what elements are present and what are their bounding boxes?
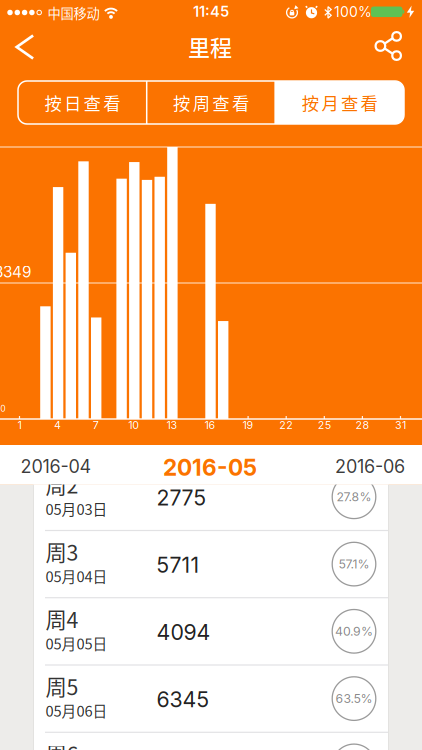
button[interactable]: Share: [367, 24, 411, 68]
button[interactable]: 按月查看: [276, 81, 404, 124]
staticText: 周4: [45, 603, 78, 634]
button[interactable]: 按日查看: [18, 81, 146, 124]
button[interactable]: 2016-04: [0, 447, 112, 486]
staticText: 31: [395, 419, 406, 432]
button[interactable]: 周6: [34, 732, 388, 750]
staticText: 周6: [45, 738, 78, 750]
staticText: 05月03日: [45, 498, 107, 519]
staticText: 2016-04: [20, 456, 91, 477]
staticText: 13: [166, 419, 177, 432]
staticText: 22: [279, 419, 293, 432]
staticText: 16: [204, 419, 215, 432]
staticText: 5711: [156, 552, 199, 578]
staticText: 6345: [156, 687, 209, 712]
button[interactable]: 周4: [34, 598, 388, 665]
staticText: 19: [243, 419, 254, 432]
staticText: 7: [93, 419, 99, 432]
staticText: 4094: [156, 619, 210, 645]
staticText: 1: [17, 419, 21, 432]
staticText: 25: [318, 419, 331, 432]
staticText: 中国移动: [47, 3, 99, 22]
staticText: 28: [355, 419, 369, 432]
staticText: 4: [54, 419, 61, 432]
staticText: 100%: [334, 3, 372, 20]
staticText: 2016-05: [163, 454, 257, 481]
button[interactable]: 2016-06: [314, 447, 422, 486]
staticText: 05月05日: [45, 632, 107, 654]
staticText: 按月查看: [302, 90, 378, 115]
staticText: 63.5%: [335, 691, 372, 706]
staticText: 11:45: [193, 3, 229, 20]
staticText: 27.8%: [336, 489, 371, 504]
button[interactable]: 按周查看: [147, 81, 275, 124]
button[interactable]: 周3: [34, 530, 388, 598]
staticText: 2016-06: [335, 456, 405, 477]
staticText: 57.1%: [338, 557, 369, 571]
staticText: 05月06日: [45, 700, 107, 721]
button[interactable]: 2016-05: [150, 448, 270, 487]
staticText: 10: [128, 419, 139, 432]
staticText: 3349: [0, 263, 32, 281]
staticText: 40.9%: [335, 624, 373, 639]
staticText: 周2: [45, 469, 78, 500]
staticText: 里程: [188, 31, 232, 62]
staticText: 按周查看: [173, 90, 249, 115]
button[interactable]: 周2: [34, 463, 388, 530]
staticText: 周5: [45, 671, 78, 701]
button[interactable]: 周5: [34, 665, 388, 732]
staticText: 周3: [45, 536, 78, 567]
staticText: 按日查看: [44, 90, 120, 115]
staticText: 05月04日: [45, 565, 107, 586]
staticText: 2775: [156, 485, 206, 511]
staticText: 0: [0, 403, 5, 414]
button[interactable]: Back: [7, 25, 47, 68]
